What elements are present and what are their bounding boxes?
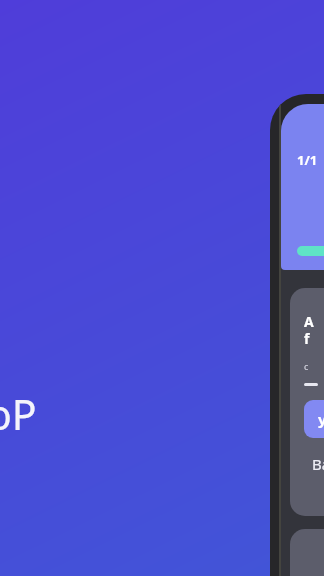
staticText: A f bbox=[304, 312, 314, 348]
button[interactable] bbox=[290, 529, 324, 576]
button[interactable]: A f bbox=[290, 288, 324, 516]
staticText: 1/1 bbox=[297, 151, 318, 169]
staticText: y bbox=[318, 409, 324, 429]
staticText: Ba bbox=[312, 454, 324, 474]
staticText: oP bbox=[0, 386, 37, 442]
button[interactable]: y bbox=[304, 400, 324, 438]
staticText: c bbox=[304, 360, 309, 372]
button[interactable]: 1/1 bbox=[281, 104, 324, 270]
